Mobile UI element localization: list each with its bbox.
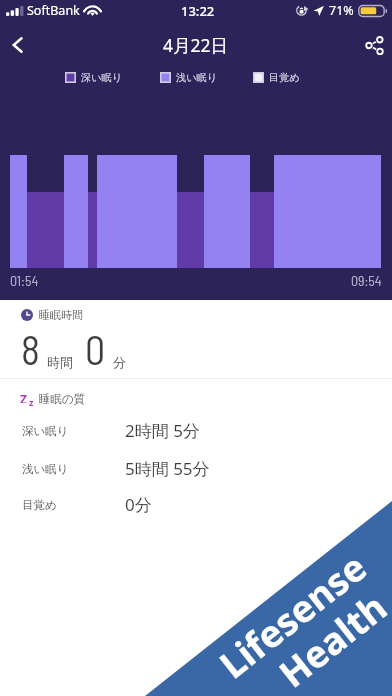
staticText: 深い眠り bbox=[81, 71, 123, 84]
staticText: 分 bbox=[113, 354, 126, 370]
staticText: 8 bbox=[21, 325, 40, 373]
staticText: 深い眠り bbox=[22, 424, 69, 438]
staticText: 0分 bbox=[125, 493, 152, 516]
button[interactable]: Share bbox=[356, 27, 392, 63]
staticText: 13:22 bbox=[181, 2, 215, 20]
staticText: 2時間 5分 bbox=[125, 419, 200, 442]
staticText: Z bbox=[20, 391, 27, 403]
staticText: 71% bbox=[329, 2, 354, 19]
staticText: 目覚め bbox=[269, 71, 300, 84]
staticText: 4月22日 bbox=[163, 33, 229, 57]
staticText: 目覚め bbox=[22, 498, 57, 512]
staticText: 5時間 55分 bbox=[125, 457, 210, 480]
staticText: 睡眠時間 bbox=[39, 308, 83, 322]
staticText: 時間 bbox=[47, 354, 73, 370]
staticText: 浅い眠り bbox=[22, 462, 69, 476]
button[interactable]: Back bbox=[0, 27, 34, 63]
staticText: 睡眠の質 bbox=[39, 392, 86, 406]
staticText: 09:54 bbox=[351, 272, 382, 289]
staticText: 01:54 bbox=[10, 272, 39, 289]
staticText: 浅い眠り bbox=[176, 71, 218, 84]
staticText: SoftBank bbox=[27, 2, 80, 19]
staticText: 0 bbox=[85, 325, 106, 373]
staticText: z bbox=[29, 396, 34, 408]
